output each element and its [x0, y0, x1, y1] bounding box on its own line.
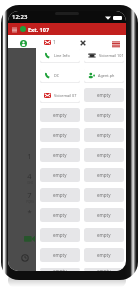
staticText: DC	[54, 73, 60, 78]
staticText: Agent.ph	[98, 73, 115, 78]
button[interactable]: 7	[24, 190, 35, 204]
staticText: empty	[97, 252, 111, 258]
button[interactable]: empty	[84, 128, 124, 142]
staticText: empty	[97, 152, 111, 158]
button[interactable]: Menu	[10, 25, 18, 33]
button[interactable]: empty	[40, 208, 80, 222]
staticText: 7	[27, 190, 32, 200]
button[interactable]: Line Info	[40, 48, 80, 62]
staticText: empty	[97, 112, 111, 118]
button[interactable]: List	[111, 39, 120, 48]
staticText: empty	[97, 172, 111, 178]
button[interactable]: 1	[24, 151, 35, 161]
staticText: 1	[53, 39, 56, 45]
button[interactable]: *	[24, 207, 35, 217]
button[interactable]: Voicemail 101	[84, 48, 124, 62]
staticText: Ext. 107	[28, 26, 50, 33]
staticText: 4	[27, 171, 32, 181]
button[interactable]: DC	[40, 68, 80, 82]
button[interactable]: Account status	[20, 40, 27, 47]
staticText: empty	[53, 192, 67, 198]
button[interactable]: Video call	[24, 235, 35, 243]
button[interactable]: empty	[40, 148, 80, 162]
button[interactable]: empty	[84, 88, 124, 102]
button[interactable]: empty	[40, 188, 80, 202]
button[interactable]: empty	[84, 188, 124, 202]
button[interactable]: 1	[44, 39, 56, 45]
staticText: Voicemail 101	[99, 53, 124, 58]
button[interactable]: Recent calls	[21, 254, 29, 262]
button[interactable]: Agent.ph	[84, 68, 124, 82]
button[interactable]: empty	[84, 148, 124, 162]
staticText: empty	[53, 212, 67, 218]
button[interactable]: 4	[24, 171, 35, 185]
staticText: empty	[97, 132, 111, 138]
staticText: *	[27, 207, 32, 217]
button[interactable]: empty	[40, 228, 80, 242]
button[interactable]: empty	[40, 248, 80, 262]
staticText: empty	[53, 172, 67, 178]
staticText: 1	[27, 151, 32, 161]
staticText: empty	[53, 252, 67, 258]
button[interactable]: empty	[84, 248, 124, 262]
button[interactable]: empty	[40, 108, 80, 122]
staticText: empty	[53, 152, 67, 158]
button[interactable]: Voicemail 07	[40, 88, 80, 102]
button[interactable]: empty	[40, 128, 80, 142]
staticText: empty	[53, 232, 67, 238]
staticText: 12:23	[12, 13, 28, 21]
staticText: Line Info	[54, 53, 70, 58]
staticText: empty	[97, 268, 111, 271]
button[interactable]: Tools	[79, 39, 87, 47]
button[interactable]: empty	[84, 268, 124, 271]
button[interactable]: empty	[40, 268, 80, 271]
button[interactable]: empty	[84, 208, 124, 222]
staticText: empty	[53, 112, 67, 118]
staticText: empty	[53, 268, 67, 271]
button[interactable]: empty	[40, 168, 80, 182]
staticText: empty	[97, 192, 111, 198]
staticText: empty	[97, 232, 111, 238]
staticText: empty	[97, 92, 111, 98]
button[interactable]: empty	[84, 228, 124, 242]
staticText: empty	[97, 212, 111, 218]
button[interactable]: empty	[84, 108, 124, 122]
staticText: empty	[53, 132, 67, 138]
staticText: Voicemail 07	[54, 93, 77, 98]
button[interactable]: empty	[84, 168, 124, 182]
